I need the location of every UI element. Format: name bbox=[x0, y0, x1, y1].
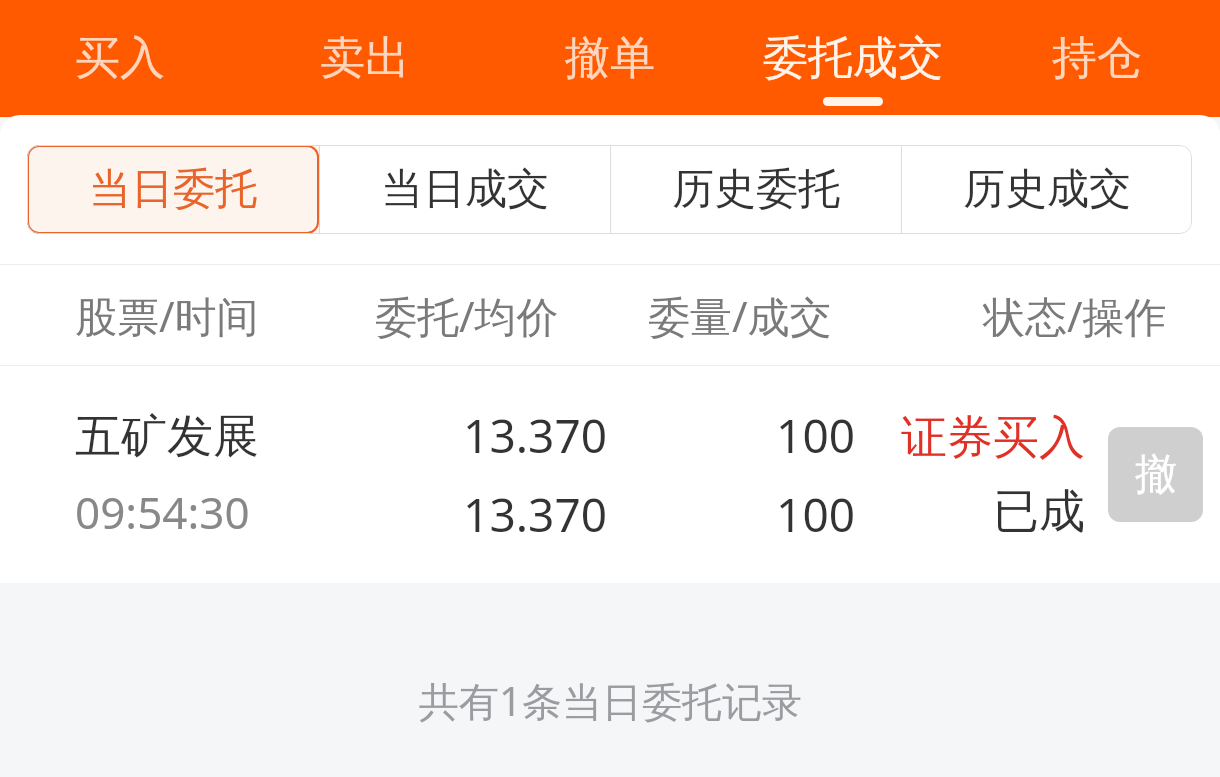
staticText: 买入 bbox=[75, 30, 165, 87]
button[interactable]: 撤单 bbox=[547, 0, 673, 117]
button[interactable]: 五矿发展 bbox=[0, 366, 1220, 583]
staticText: 100 bbox=[776, 483, 855, 546]
staticText: 共有1条当日委托记录 bbox=[419, 673, 802, 728]
staticText: 持仓 bbox=[1052, 30, 1142, 87]
button[interactable]: 当日成交 bbox=[319, 145, 610, 234]
staticText: 13.370 bbox=[463, 404, 607, 467]
staticText: 委量/成交 bbox=[648, 287, 832, 344]
button[interactable]: 当日委托 bbox=[27, 145, 319, 234]
staticText: 撤 bbox=[1135, 448, 1177, 501]
button[interactable]: 持仓 bbox=[1034, 0, 1160, 117]
button[interactable]: 历史成交 bbox=[901, 145, 1192, 234]
staticText: 委托成交 bbox=[763, 30, 943, 87]
staticText: 证券买入 bbox=[901, 409, 1085, 467]
staticText: 历史委托 bbox=[672, 163, 840, 216]
staticText: 卖出 bbox=[320, 30, 410, 87]
staticText: 当日委托 bbox=[89, 163, 257, 216]
button[interactable]: 卖出 bbox=[302, 0, 428, 117]
staticText: 历史成交 bbox=[963, 163, 1131, 216]
staticText: 委托/均价 bbox=[375, 287, 559, 344]
staticText: 状态/操作 bbox=[983, 287, 1167, 344]
staticText: 撤单 bbox=[565, 30, 655, 87]
staticText: 股票/时间 bbox=[75, 287, 259, 344]
button[interactable]: 买入 bbox=[57, 0, 183, 117]
button[interactable]: 撤单 bbox=[1108, 427, 1203, 522]
button[interactable]: 历史委托 bbox=[610, 145, 901, 234]
staticText: 09:54:30 bbox=[75, 482, 250, 542]
staticText: 13.370 bbox=[463, 483, 607, 546]
staticText: 已成 bbox=[993, 483, 1085, 541]
button[interactable]: 委托成交 bbox=[743, 0, 963, 117]
staticText: 五矿发展 bbox=[75, 408, 259, 466]
staticText: 100 bbox=[776, 404, 855, 467]
staticText: 当日成交 bbox=[381, 163, 549, 216]
